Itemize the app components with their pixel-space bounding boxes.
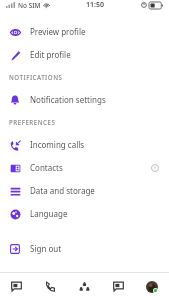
button[interactable]: Contacts [0, 156, 169, 179]
button[interactable]: Language [0, 202, 169, 225]
button[interactable]: Incoming calls [0, 133, 169, 156]
staticText: Sign out [30, 243, 62, 254]
button[interactable]: Messages [101, 273, 135, 300]
button[interactable]: Chats [0, 273, 33, 300]
staticText: No SIM [18, 1, 41, 10]
button[interactable]: Sign out [0, 237, 169, 260]
staticText: NOTIFICATIONS [9, 73, 63, 81]
button[interactable]: Calls [33, 273, 67, 300]
button[interactable]: People [67, 273, 101, 300]
staticText: Notification settings [30, 94, 106, 105]
staticText: 11:50 [86, 0, 104, 10]
staticText: Preview profile [30, 26, 86, 37]
button[interactable]: Edit profile [0, 43, 169, 66]
staticText: Edit profile [30, 49, 71, 60]
staticText: Language [30, 208, 68, 219]
button[interactable]: Preview profile [0, 20, 169, 43]
staticText: Data and storage [30, 185, 95, 196]
staticText: Incoming calls [30, 139, 85, 150]
staticText: PREFERENCES [9, 118, 56, 126]
button[interactable]: Profile [135, 273, 169, 300]
button[interactable]: Data and storage [0, 179, 169, 202]
button[interactable]: Notification settings [0, 88, 169, 111]
staticText: Contacts [30, 162, 63, 173]
